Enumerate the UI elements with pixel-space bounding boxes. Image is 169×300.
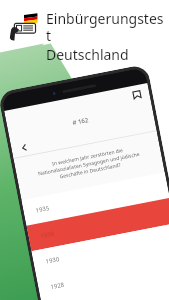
button[interactable]: 1938 xyxy=(26,198,169,251)
staticText: Einbürgerungstest xyxy=(46,9,166,45)
button[interactable]: 1925 xyxy=(41,274,169,300)
staticText: 1935 xyxy=(35,204,50,215)
staticText: 1938 xyxy=(40,230,55,240)
button[interactable]: 1928 xyxy=(36,249,169,300)
staticText: In welchem Jahr zerstörten die Nationals… xyxy=(21,141,157,187)
button[interactable]: App icon xyxy=(8,10,40,42)
button[interactable]: 1935 xyxy=(21,172,169,226)
staticText: 1930 xyxy=(45,255,60,266)
staticText: 1928 xyxy=(50,281,65,291)
staticText: Deutschland xyxy=(46,45,129,64)
staticText: # 162 xyxy=(72,116,89,127)
button[interactable]: 1930 xyxy=(31,223,169,277)
button[interactable]: Bookmark xyxy=(129,87,143,101)
button[interactable]: Back xyxy=(17,141,32,155)
